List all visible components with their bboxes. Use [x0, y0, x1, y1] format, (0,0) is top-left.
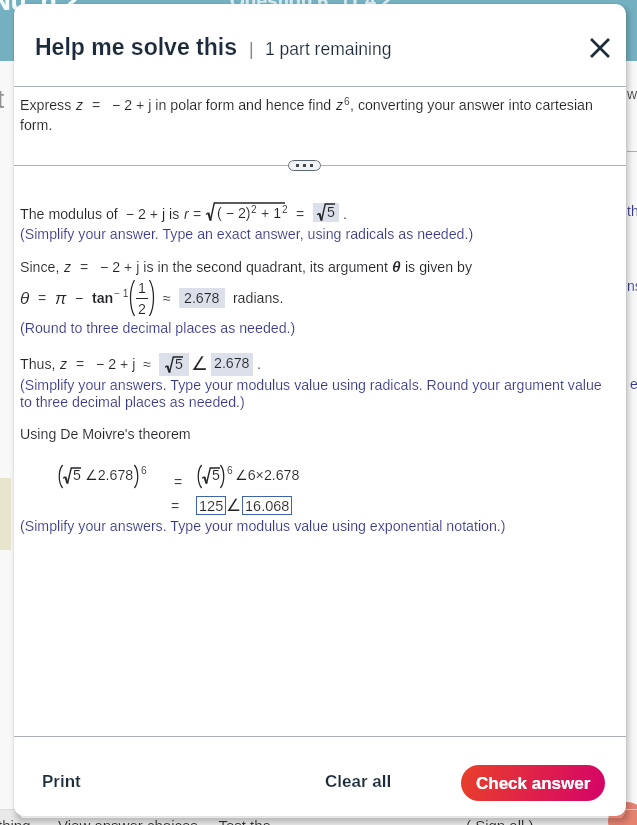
staticText: |: [249, 39, 254, 59]
staticText: Question 6: 11.4.2: [230, 0, 392, 11]
staticText: 2.678: [184, 290, 220, 306]
button[interactable]: Close: [581, 29, 619, 67]
staticText: Using De Moivre's theorem: [20, 426, 191, 442]
staticText: thing… View answer choices Test the…: [0, 817, 286, 825]
staticText: =: [288, 206, 313, 222]
staticText: − 1: [114, 288, 129, 299]
staticText: radians.: [225, 290, 284, 306]
staticText: 2: [138, 301, 146, 317]
staticText: .: [253, 356, 261, 372]
staticText: ( Sign all ): [466, 817, 534, 825]
staticText: Since,: [20, 259, 64, 275]
staticText: ≈: [155, 290, 179, 306]
staticText: 1: [138, 280, 146, 296]
staticText: θ: [20, 289, 30, 308]
staticText: =: [171, 498, 180, 514]
staticText: 6: [344, 96, 350, 107]
staticText: 16.068: [245, 498, 290, 514]
button[interactable]: 125: [196, 496, 226, 515]
staticText: =: [189, 206, 206, 222]
staticText: ∠2.678: [81, 467, 134, 484]
staticText: to three decimal places as needed.): [20, 394, 245, 410]
staticText: −: [67, 290, 92, 306]
button[interactable]: 16.068: [242, 496, 292, 515]
staticText: 1 part remaining: [265, 39, 392, 59]
button[interactable]: Check answer: [461, 765, 605, 801]
staticText: =: [174, 474, 183, 490]
staticText: , converting your answer into cartesian: [350, 97, 593, 113]
staticText: θ: [392, 258, 401, 275]
staticText: z: [60, 356, 68, 372]
staticText: z: [64, 259, 72, 275]
staticText: is given by: [401, 259, 472, 275]
staticText: Thus,: [20, 356, 60, 372]
staticText: = − 2 + j ≈: [68, 356, 159, 372]
staticText: Help me solve this: [35, 34, 237, 60]
staticText: th: [627, 203, 637, 219]
staticText: ∠: [226, 495, 242, 515]
staticText: 2.678: [214, 355, 250, 371]
staticText: 6: [141, 465, 147, 476]
staticText: The modulus of − 2 + j is: [20, 206, 184, 222]
staticText: (Simplify your answers. Type your modulu…: [20, 377, 602, 393]
staticText: .: [339, 206, 347, 222]
button[interactable]: Clear all: [317, 768, 400, 795]
staticText: Nu g 2: [0, 0, 79, 15]
staticText: we: [627, 86, 637, 102]
button[interactable]: Print: [34, 768, 89, 795]
staticText: + 1: [257, 205, 282, 221]
staticText: 5: [212, 467, 220, 483]
staticText: Express: [20, 97, 76, 113]
staticText: 5: [327, 204, 335, 220]
staticText: ∠: [191, 352, 209, 372]
staticText: 2: [251, 204, 257, 215]
staticText: 5: [175, 356, 183, 372]
staticText: (Simplify your answer. Type an exact ans…: [20, 226, 474, 242]
staticText: Print: [42, 772, 81, 791]
staticText: π: [55, 289, 67, 308]
staticText: 2: [282, 204, 288, 215]
staticText: z: [76, 97, 84, 113]
staticText: t: [0, 84, 5, 113]
staticText: 6: [227, 465, 233, 476]
staticText: z: [336, 97, 344, 113]
staticText: (Round to three decimal places as needed…: [20, 320, 296, 336]
staticText: 5: [73, 467, 81, 483]
staticText: ( − 2): [217, 205, 251, 221]
staticText: 125: [199, 498, 224, 514]
staticText: ns: [627, 278, 637, 294]
staticText: e: [630, 376, 637, 392]
staticText: =: [30, 290, 55, 306]
staticText: Check answer: [476, 774, 591, 793]
staticText: form.: [20, 117, 53, 133]
button[interactable]: Expand: [288, 160, 321, 171]
staticText: ∠6×2.678: [235, 467, 300, 484]
staticText: = − 2 + j is in the second quadrant, its…: [72, 259, 392, 275]
staticText: = − 2 + j in polar form and hence find: [84, 97, 336, 113]
staticText: Clear all: [325, 772, 392, 791]
staticText: r: [184, 206, 189, 222]
staticText: (Simplify your answers. Type your modulu…: [20, 518, 506, 534]
staticText: tan: [92, 290, 114, 306]
